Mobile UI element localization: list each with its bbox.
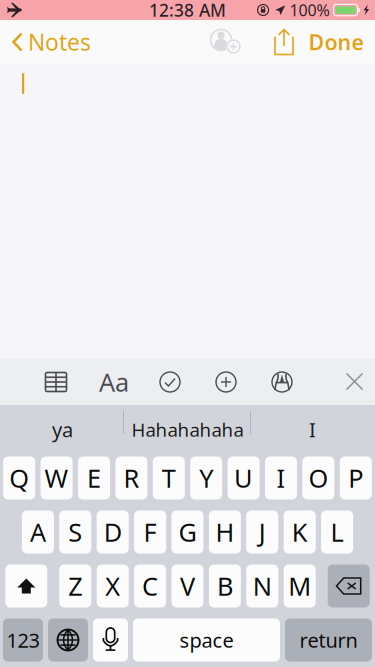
staticText: O xyxy=(308,461,328,495)
staticText: V xyxy=(180,569,195,603)
staticText: P xyxy=(348,461,363,495)
staticText: 12:38 AM xyxy=(149,0,226,21)
button[interactable]: Q xyxy=(3,456,35,499)
staticText: U xyxy=(234,461,253,495)
staticText: N xyxy=(253,569,272,603)
button[interactable]: Notes xyxy=(0,20,99,64)
staticText: G xyxy=(178,515,196,549)
button[interactable]: Z xyxy=(59,564,91,607)
button[interactable]: K xyxy=(284,510,316,553)
staticText: R xyxy=(123,461,139,495)
button[interactable]: E xyxy=(78,456,110,499)
button[interactable]: Hahahahaha xyxy=(125,409,250,449)
button[interactable]: H xyxy=(209,510,241,553)
button[interactable]: Shift xyxy=(5,564,47,607)
button[interactable]: R xyxy=(115,456,147,499)
button[interactable]: Hide keyboard xyxy=(335,360,375,404)
staticText: Q xyxy=(9,461,29,495)
staticText: D xyxy=(104,515,122,549)
button[interactable]: L xyxy=(321,510,353,553)
staticText: B xyxy=(217,569,233,603)
button[interactable]: W xyxy=(41,456,73,499)
button[interactable]: Share xyxy=(257,20,311,64)
button[interactable]: B xyxy=(209,564,241,607)
button[interactable]: F xyxy=(134,510,166,553)
staticText: E xyxy=(87,461,101,495)
staticText: Done xyxy=(308,28,363,56)
button[interactable]: Delete xyxy=(328,564,370,607)
button[interactable]: M xyxy=(284,564,316,607)
button[interactable]: Checklist xyxy=(155,360,185,404)
staticText: Hahahahaha xyxy=(131,417,243,442)
staticText: T xyxy=(162,461,176,495)
button[interactable]: D xyxy=(97,510,129,553)
button[interactable]: J xyxy=(246,510,278,553)
staticText: L xyxy=(331,515,344,549)
button[interactable]: return xyxy=(285,618,372,661)
button[interactable]: X xyxy=(97,564,129,607)
button[interactable]: Dictation xyxy=(93,618,128,661)
staticText: X xyxy=(105,569,120,603)
button[interactable]: ya xyxy=(0,409,125,449)
button[interactable]: A xyxy=(22,510,54,553)
staticText: 100% xyxy=(290,0,330,21)
staticText: A xyxy=(30,515,46,549)
button[interactable]: S xyxy=(59,510,91,553)
staticText: ya xyxy=(52,416,73,443)
staticText: K xyxy=(292,515,308,549)
staticText: 123 xyxy=(6,627,39,653)
button[interactable]: N xyxy=(246,564,278,607)
staticText: C xyxy=(142,569,158,603)
button[interactable]: Next keyboard xyxy=(48,618,88,661)
staticText: S xyxy=(68,515,82,549)
button[interactable]: Aa xyxy=(99,360,129,404)
staticText: H xyxy=(215,515,234,549)
staticText: W xyxy=(45,461,69,495)
button[interactable]: U xyxy=(228,456,260,499)
button[interactable]: V xyxy=(171,564,203,607)
button[interactable]: Add People xyxy=(195,20,257,64)
button[interactable]: Table xyxy=(41,360,71,404)
staticText: M xyxy=(288,569,311,603)
staticText: space xyxy=(179,627,233,653)
staticText: I xyxy=(276,461,285,495)
staticText: Z xyxy=(68,569,82,603)
button[interactable]: Markup xyxy=(267,360,297,404)
staticText: Aa xyxy=(99,365,129,399)
button[interactable]: I xyxy=(250,409,375,449)
staticText: Y xyxy=(199,461,213,495)
button[interactable]: C xyxy=(134,564,166,607)
button[interactable]: Done xyxy=(311,20,361,64)
staticText: Notes xyxy=(28,27,91,57)
staticText: return xyxy=(299,627,357,653)
button[interactable]: space xyxy=(133,618,280,661)
staticText: I xyxy=(309,416,316,443)
button[interactable]: O xyxy=(302,456,334,499)
button[interactable]: Y xyxy=(190,456,222,499)
button[interactable]: I xyxy=(265,456,297,499)
staticText: J xyxy=(259,515,266,549)
button[interactable]: T xyxy=(153,456,185,499)
button[interactable]: 123 xyxy=(3,618,43,661)
staticText: F xyxy=(144,515,157,549)
button[interactable]: Add attachment xyxy=(211,360,241,404)
button[interactable]: G xyxy=(171,510,203,553)
button[interactable]: P xyxy=(340,456,372,499)
